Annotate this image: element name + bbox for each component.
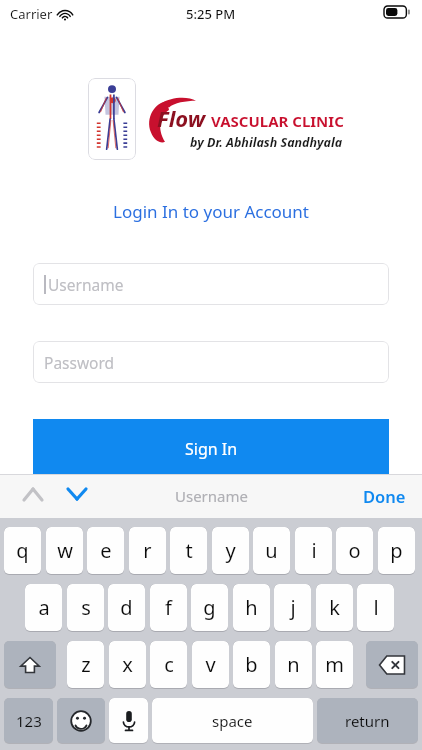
staticText: space: [212, 711, 253, 731]
staticText: x: [122, 651, 133, 678]
button[interactable]: o: [336, 527, 373, 575]
button[interactable]: space: [152, 698, 313, 744]
staticText: 123: [16, 711, 42, 731]
button[interactable]: a: [25, 584, 62, 632]
button[interactable]: p: [378, 527, 415, 575]
staticText: r: [143, 537, 152, 564]
staticText: c: [164, 651, 174, 678]
button[interactable]: Previous field: [14, 474, 52, 514]
staticText: u: [265, 537, 278, 564]
button[interactable]: Emoji: [57, 698, 105, 744]
staticText: 5:25 PM: [186, 5, 236, 23]
staticText: Username: [175, 486, 248, 506]
staticText: f: [165, 594, 172, 621]
button[interactable]: d: [108, 584, 145, 632]
button[interactable]: Done: [363, 485, 406, 507]
button[interactable]: q: [4, 527, 41, 575]
staticText: k: [329, 594, 340, 621]
staticText: w: [57, 537, 73, 564]
staticText: Username: [48, 274, 124, 295]
button[interactable]: k: [316, 584, 353, 632]
staticText: g: [203, 594, 216, 621]
staticText: o: [348, 537, 361, 564]
staticText: j: [290, 594, 296, 621]
staticText: e: [100, 537, 112, 564]
staticText: n: [287, 651, 300, 678]
staticText: d: [120, 594, 133, 621]
button[interactable]: Sign In: [33, 419, 389, 475]
staticText: Flow: [157, 103, 206, 133]
staticText: y: [225, 537, 236, 564]
button[interactable]: l: [357, 584, 394, 632]
button[interactable]: u: [253, 527, 290, 575]
staticText: Password: [44, 352, 115, 373]
button[interactable]: s: [67, 584, 104, 632]
staticText: VASCULAR CLINIC: [211, 111, 344, 131]
staticText: m: [325, 651, 344, 678]
button[interactable]: Dictation: [109, 698, 148, 744]
staticText: h: [245, 594, 258, 621]
button[interactable]: Next field: [58, 474, 96, 514]
staticText: t: [185, 537, 193, 564]
button[interactable]: h: [233, 584, 270, 632]
staticText: b: [245, 651, 258, 678]
staticText: s: [81, 594, 91, 621]
button[interactable]: Username: [33, 263, 389, 305]
button[interactable]: n: [275, 641, 312, 689]
button[interactable]: x: [109, 641, 146, 689]
button[interactable]: Numbers: [4, 698, 53, 744]
button[interactable]: t: [170, 527, 207, 575]
button[interactable]: e: [87, 527, 124, 575]
staticText: q: [16, 537, 29, 564]
button[interactable]: v: [192, 641, 229, 689]
staticText: p: [390, 537, 403, 564]
staticText: Carrier: [10, 5, 53, 23]
button[interactable]: i: [295, 527, 332, 575]
button[interactable]: j: [274, 584, 311, 632]
button[interactable]: y: [212, 527, 249, 575]
button[interactable]: b: [233, 641, 270, 689]
staticText: i: [311, 537, 317, 564]
button[interactable]: Backspace: [366, 641, 418, 689]
staticText: by Dr. Abhilash Sandhyala: [190, 134, 343, 151]
staticText: v: [205, 651, 216, 678]
button[interactable]: z: [67, 641, 104, 689]
staticText: z: [81, 651, 91, 678]
button[interactable]: f: [150, 584, 187, 632]
button[interactable]: w: [46, 527, 83, 575]
staticText: Sign In: [185, 438, 238, 460]
button[interactable]: m: [316, 641, 353, 689]
button[interactable]: c: [150, 641, 187, 689]
staticText: a: [38, 594, 50, 621]
button[interactable]: Shift: [4, 641, 56, 689]
staticText: l: [373, 594, 379, 621]
staticText: Done: [363, 485, 406, 507]
button[interactable]: Password: [33, 341, 389, 383]
staticText: return: [345, 711, 390, 731]
staticText: Login In to your Account: [113, 200, 310, 223]
button[interactable]: r: [129, 527, 166, 575]
button[interactable]: g: [191, 584, 228, 632]
button[interactable]: return: [317, 698, 418, 744]
